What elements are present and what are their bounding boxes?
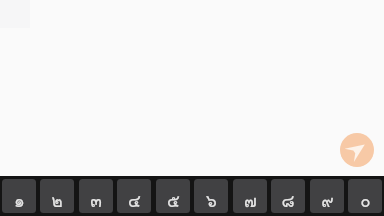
staticText: ๗ (244, 187, 257, 213)
button[interactable]: ๒ (40, 179, 74, 213)
staticText: ๔ (128, 187, 141, 213)
staticText: ๙ (321, 187, 334, 213)
button[interactable]: ๐ (348, 179, 382, 213)
button[interactable]: ๕ (156, 179, 190, 213)
button[interactable] (340, 133, 374, 167)
button[interactable]: ๑ (2, 179, 36, 213)
button[interactable]: ๗ (233, 179, 267, 213)
button[interactable]: ๙ (310, 179, 344, 213)
button[interactable]: ๔ (117, 179, 151, 213)
staticText: ๒ (51, 187, 63, 213)
button[interactable]: ๖ (194, 179, 228, 213)
staticText: ๓ (90, 187, 102, 213)
staticText: ๑ (14, 187, 25, 213)
staticText: ๘ (281, 187, 295, 213)
staticText: ๕ (167, 187, 180, 213)
button[interactable]: ๓ (79, 179, 113, 213)
button[interactable]: ๘ (271, 179, 305, 213)
staticText: ๖ (206, 187, 217, 213)
staticText: ๐ (360, 187, 371, 213)
